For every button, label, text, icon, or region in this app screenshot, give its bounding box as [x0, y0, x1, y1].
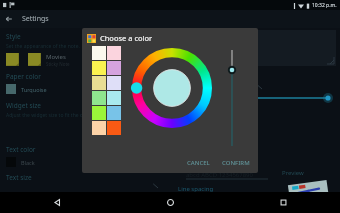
- button[interactable]: Brightness: [225, 48, 239, 148]
- button[interactable]: Black: [6, 157, 35, 167]
- button[interactable]: Home: [114, 192, 227, 213]
- staticText: Movies: [46, 53, 66, 61]
- staticText: Black: [21, 159, 35, 166]
- staticText: Adjust the widget size to fit the de: [6, 112, 86, 119]
- staticText: Sticky Note: [46, 61, 70, 67]
- staticText: Set the appearance of the note.: [6, 43, 80, 50]
- button[interactable]: Back: [0, 192, 114, 213]
- staticText: Settings: [22, 14, 49, 24]
- button[interactable]: Recents: [227, 192, 340, 213]
- staticText: Text color: [6, 145, 36, 154]
- staticText: CONFIRM: [222, 159, 250, 167]
- staticText: Style: [6, 32, 21, 41]
- staticText: Preview: [282, 169, 304, 177]
- staticText: Paper color: [6, 72, 41, 81]
- button[interactable]: [6, 53, 20, 67]
- staticText: Widget size: [6, 101, 41, 110]
- button[interactable]: CONFIRM: [220, 158, 252, 168]
- button[interactable]: Turquoise: [6, 84, 47, 94]
- staticText: abcd ABCD 1234567890: [186, 171, 253, 179]
- button[interactable]: [28, 53, 42, 67]
- staticText: Turquoise: [21, 86, 47, 93]
- staticText: Choose a color: [100, 33, 153, 43]
- staticText: CANCEL: [187, 159, 210, 167]
- button[interactable]: CANCEL: [185, 158, 212, 168]
- staticText: 10:32 p.m.: [312, 2, 337, 9]
- staticText: Text size: [6, 173, 32, 182]
- button[interactable]: [132, 48, 212, 128]
- staticText: Line spacing: [178, 185, 214, 193]
- button[interactable]: Back: [0, 10, 18, 28]
